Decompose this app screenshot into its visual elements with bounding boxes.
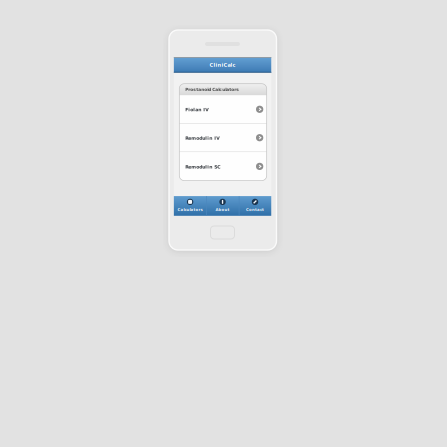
- staticText: Prostanoid Calculators: [185, 87, 239, 92]
- button[interactable]: Remodulin SC: [179, 152, 267, 181]
- button[interactable]: Contact: [239, 196, 271, 216]
- staticText: Calculators: [178, 207, 203, 212]
- staticText: CliniCalc: [210, 62, 236, 68]
- staticText: About: [216, 207, 230, 212]
- staticText: Contact: [246, 207, 264, 212]
- staticText: Remodulin IV: [185, 136, 220, 141]
- button[interactable]: Fiolan IV: [179, 95, 267, 124]
- staticText: Fiolan IV: [185, 107, 209, 112]
- button[interactable]: Remodulin IV: [179, 124, 267, 152]
- button[interactable]: About: [206, 196, 239, 216]
- staticText: Remodulin SC: [185, 164, 220, 170]
- button[interactable]: Calculators: [174, 196, 206, 216]
